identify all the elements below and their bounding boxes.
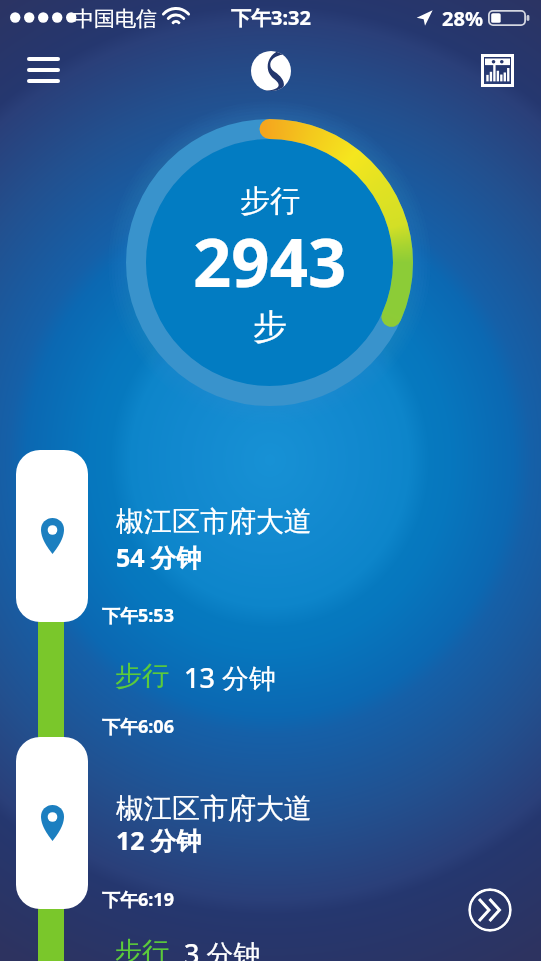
staticText: 2943 xyxy=(193,215,347,306)
other: Logo xyxy=(251,51,291,91)
staticText: 步行 xyxy=(115,659,169,693)
staticText: 椒江区市府大道 xyxy=(116,791,312,826)
staticText: 下午3:32 xyxy=(231,4,311,31)
staticText: 下午6:06 xyxy=(102,714,174,739)
staticText: 12 分钟 xyxy=(116,823,202,857)
staticText: 54 分钟 xyxy=(116,540,202,574)
button[interactable]: Menu xyxy=(11,41,76,99)
staticText: 下午6:19 xyxy=(102,887,174,912)
button[interactable]: Statistics xyxy=(469,42,525,98)
staticText: 中国电信 xyxy=(73,6,157,32)
staticText: 步 xyxy=(253,305,287,348)
staticText: 13 分钟 xyxy=(184,659,276,696)
button[interactable]: Next xyxy=(468,888,512,932)
staticText: 下午5:53 xyxy=(102,603,174,628)
staticText: 步行 xyxy=(240,182,300,220)
staticText: 3 分钟 xyxy=(184,935,261,961)
staticText: 椒江区市府大道 xyxy=(116,504,312,539)
button[interactable]: 步行 xyxy=(0,935,541,961)
button[interactable]: 步行 xyxy=(0,659,541,742)
staticText: 28% xyxy=(442,5,483,32)
button[interactable]: 椒江区市府大道 xyxy=(0,737,541,915)
staticText: 步行 xyxy=(115,935,169,961)
button[interactable]: 椒江区市府大道 xyxy=(0,450,541,631)
